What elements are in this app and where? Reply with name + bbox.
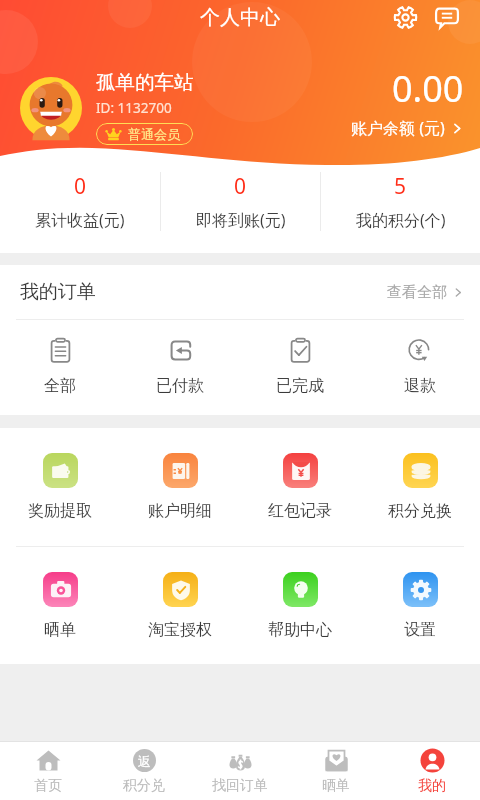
staticText: 红包记录 [268, 501, 332, 521]
staticText: 设置 [404, 620, 436, 640]
staticText: 普通会员 [128, 126, 180, 142]
staticText: 孤单的车站 [96, 70, 194, 95]
button[interactable]: 查看全部 [387, 277, 464, 308]
staticText: 奖励提取 [28, 501, 92, 521]
button[interactable]: 已付款 [120, 320, 240, 415]
staticText: 已付款 [156, 376, 204, 396]
staticText: 淘宝授权 [148, 620, 212, 640]
button[interactable]: 全部 [0, 320, 120, 415]
button[interactable]: 0.00 [351, 64, 464, 139]
staticText: 我的积分(个) [356, 209, 446, 231]
button[interactable]: 退款 [360, 320, 480, 415]
button[interactable]: 已完成 [240, 320, 360, 415]
button[interactable]: 我的 [384, 742, 480, 800]
staticText: 已完成 [276, 376, 324, 396]
staticText: 首页 [34, 777, 62, 795]
staticText: 全部 [44, 376, 76, 396]
staticText: 累计收益(元) [35, 209, 125, 231]
button[interactable]: 账户明细 [120, 428, 240, 546]
staticText: 账户余额 (元) [351, 117, 445, 139]
staticText: 帮助中心 [268, 620, 332, 640]
staticText: 查看全部 [387, 283, 447, 302]
staticText: 晒单 [44, 620, 76, 640]
button[interactable]: 普通会员 [96, 123, 193, 145]
button[interactable]: 帮助中心 [240, 547, 360, 664]
staticText: 0.00 [392, 64, 464, 113]
button[interactable]: 5 [321, 172, 480, 231]
staticText: 退款 [404, 376, 436, 396]
staticText: 积分兑换 [388, 501, 452, 521]
button[interactable]: 淘宝授权 [120, 547, 240, 664]
button[interactable]: Messages [426, 0, 468, 34]
button[interactable]: 0 [161, 172, 320, 231]
staticText: 晒单 [322, 777, 350, 795]
button[interactable]: 设置 [360, 547, 480, 664]
button[interactable]: Settings [384, 0, 426, 34]
staticText: 即将到账(元) [196, 209, 286, 231]
button[interactable]: 红包记录 [240, 428, 360, 546]
staticText: 找回订单 [212, 777, 268, 795]
staticText: 我的订单 [20, 280, 96, 304]
staticText: 返 [138, 753, 151, 769]
staticText: 5 [394, 172, 407, 201]
button[interactable]: 首页 [0, 742, 96, 800]
staticText: 我的 [418, 777, 446, 795]
button[interactable]: 奖励提取 [0, 428, 120, 546]
staticText: 个人中心 [200, 5, 280, 30]
button[interactable]: 返 [96, 742, 192, 800]
button[interactable]: 晒单 [0, 547, 120, 664]
button[interactable]: 找回订单 [192, 742, 288, 800]
button[interactable]: 0 [0, 172, 160, 231]
button[interactable]: 积分兑换 [360, 428, 480, 546]
staticText: ID: 1132700 [96, 99, 172, 117]
staticText: 0 [234, 172, 247, 201]
staticText: 积分兑 [123, 777, 165, 795]
staticText: 0 [74, 172, 87, 201]
button[interactable]: 晒单 [288, 742, 384, 800]
staticText: 账户明细 [148, 501, 212, 521]
